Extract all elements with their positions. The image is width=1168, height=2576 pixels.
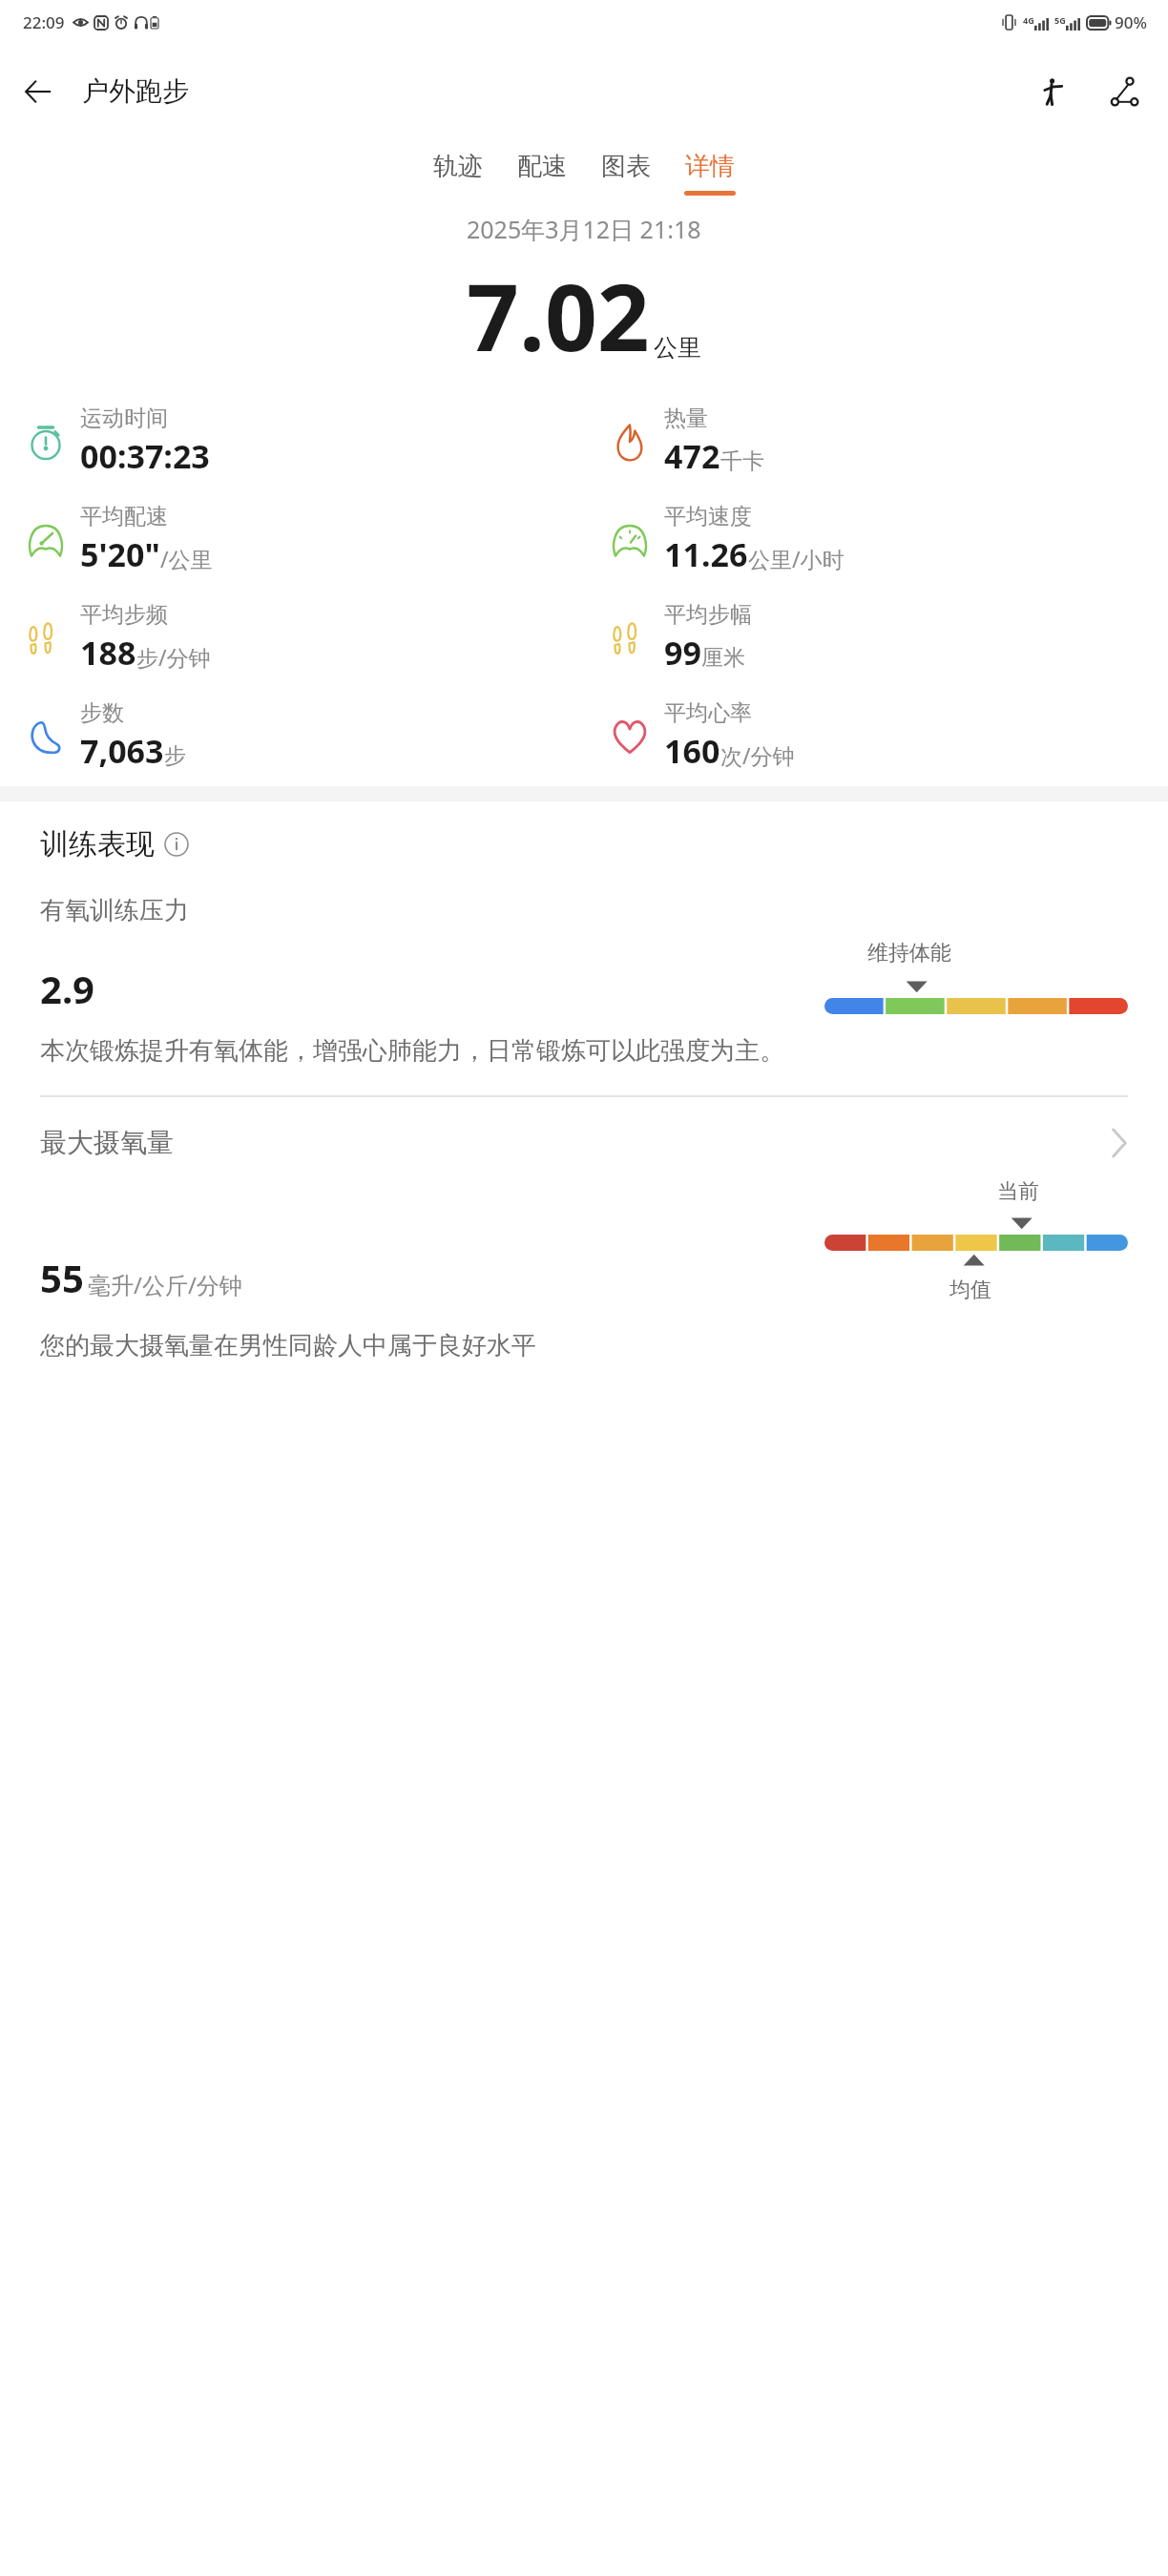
staticText: 图表: [601, 151, 651, 182]
staticText: 7.02: [467, 253, 650, 378]
button[interactable]: 运动时间: [0, 403, 584, 480]
staticText: 户外跑步: [82, 74, 189, 108]
staticText: 2025年3月12日 21:18: [467, 213, 701, 245]
button[interactable]: 平均步幅: [584, 599, 1168, 676]
button[interactable]: 最大摄氧量: [40, 1126, 1128, 1159]
staticText: 平均步幅: [664, 601, 752, 629]
button[interactable]: 平均配速: [0, 501, 584, 578]
staticText: 00:37:23: [80, 434, 210, 478]
staticText: 472: [664, 434, 720, 478]
staticText: 5G: [1054, 14, 1066, 26]
staticText: 99: [664, 631, 701, 675]
button[interactable]: 平均步频: [0, 599, 584, 676]
staticText: 当前: [997, 1178, 1039, 1205]
staticText: 4G: [1023, 14, 1034, 26]
staticText: 步: [164, 742, 186, 770]
staticText: 11.26: [664, 532, 748, 576]
staticText: 160: [664, 729, 720, 773]
staticText: 本次锻炼提升有氧体能，增强心肺能力，日常锻炼可以此强度为主。: [40, 1035, 784, 1067]
staticText: 公里/小时: [748, 544, 845, 573]
button[interactable]: Share: [1097, 65, 1151, 118]
staticText: 188: [80, 631, 136, 675]
staticText: /公里: [160, 544, 213, 573]
staticText: 5'20": [80, 532, 160, 576]
staticText: 轨迹: [433, 151, 483, 182]
staticText: 维持体能: [867, 940, 951, 966]
staticText: 90%: [1115, 11, 1147, 33]
button[interactable]: 平均心率: [584, 697, 1168, 775]
button[interactable]: 轨迹: [427, 147, 490, 199]
staticText: 运动时间: [80, 405, 168, 432]
staticText: 有氧训练压力: [40, 895, 189, 926]
staticText: 平均心率: [664, 699, 752, 727]
staticText: 2.9: [40, 963, 94, 1014]
staticText: 7,063: [80, 729, 164, 773]
button[interactable]: 详情: [678, 147, 741, 199]
staticText: 次/分钟: [720, 740, 795, 770]
button[interactable]: 平均速度: [584, 501, 1168, 578]
staticText: 平均配速: [80, 503, 168, 530]
staticText: 您的最大摄氧量在男性同龄人中属于良好水平: [40, 1330, 536, 1361]
button[interactable]: 配速: [511, 147, 574, 199]
staticText: 详情: [685, 151, 735, 182]
staticText: 平均步频: [80, 601, 168, 629]
button[interactable]: 图表: [594, 147, 657, 199]
staticText: 55: [40, 1252, 84, 1303]
button[interactable]: 训练表现: [40, 826, 189, 862]
button[interactable]: Back: [13, 67, 63, 116]
staticText: 步数: [80, 699, 124, 727]
staticText: 厘米: [701, 644, 745, 672]
staticText: 配速: [517, 151, 567, 182]
button[interactable]: Running figure: [1025, 65, 1078, 118]
staticText: 公里: [654, 333, 701, 363]
staticText: 千卡: [720, 447, 764, 475]
staticText: 平均速度: [664, 503, 752, 530]
button[interactable]: 热量: [584, 403, 1168, 480]
staticText: 步/分钟: [136, 642, 211, 672]
staticText: 最大摄氧量: [40, 1126, 174, 1159]
staticText: 训练表现: [40, 826, 155, 862]
staticText: 毫升/公斤/分钟: [88, 1269, 242, 1300]
staticText: 均值: [949, 1277, 991, 1303]
staticText: 22:09: [23, 11, 65, 33]
staticText: 热量: [664, 405, 708, 432]
button[interactable]: 步数: [0, 697, 584, 775]
